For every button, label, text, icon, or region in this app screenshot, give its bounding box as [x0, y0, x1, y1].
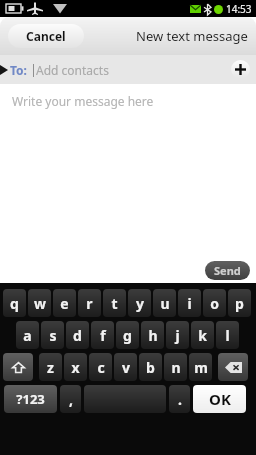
staticText: To:	[10, 62, 27, 78]
button[interactable]: .	[169, 385, 190, 413]
staticText: x	[71, 358, 80, 377]
button[interactable]: c	[89, 353, 112, 381]
staticText: j	[175, 326, 180, 345]
button[interactable]: y	[128, 289, 151, 317]
button[interactable]: u	[153, 289, 176, 317]
button[interactable]: ,	[60, 385, 81, 413]
staticText: k	[198, 326, 207, 345]
staticText: i	[187, 294, 192, 313]
staticText: Write your message here	[12, 93, 154, 109]
button[interactable]: d	[66, 321, 89, 349]
staticText: y	[136, 294, 144, 313]
button[interactable]: i	[178, 289, 201, 317]
button[interactable]: ?123	[4, 385, 57, 413]
staticText: Send	[214, 263, 241, 278]
button[interactable]: Backspace	[218, 353, 248, 381]
button[interactable]: x	[64, 353, 87, 381]
staticText: c	[97, 358, 105, 377]
button[interactable]: q	[3, 289, 26, 317]
staticText: p	[235, 294, 244, 313]
staticText: New text message	[136, 27, 248, 45]
button[interactable]: j	[166, 321, 189, 349]
staticText: t	[111, 294, 118, 313]
button[interactable]: f	[91, 321, 114, 349]
staticText: r	[86, 294, 93, 313]
button[interactable]: a	[16, 321, 39, 349]
staticText: g	[123, 326, 132, 345]
staticText: m	[194, 358, 208, 377]
button[interactable]: k	[191, 321, 214, 349]
staticText: s	[49, 326, 57, 345]
staticText: Add contacts	[36, 62, 109, 78]
button[interactable]: z	[39, 353, 62, 381]
staticText: e	[60, 294, 69, 313]
staticText: l	[225, 326, 230, 345]
staticText: q	[10, 294, 19, 313]
staticText: OK	[209, 389, 231, 409]
button[interactable]: w	[28, 289, 51, 317]
button[interactable]: Space	[84, 385, 166, 413]
button[interactable]: p	[228, 289, 251, 317]
button[interactable]: o	[203, 289, 226, 317]
staticText: a	[23, 326, 32, 345]
button[interactable]: Shift	[3, 353, 33, 381]
button[interactable]: Write your message here	[0, 84, 256, 283]
staticText: z	[47, 358, 54, 377]
staticText: Cancel	[26, 28, 66, 44]
staticText: .	[178, 390, 182, 409]
staticText: w	[34, 294, 46, 313]
staticText: 14:53	[226, 2, 252, 16]
staticText: v	[122, 358, 130, 377]
button[interactable]: e	[53, 289, 76, 317]
staticText: o	[210, 294, 219, 313]
button[interactable]: g	[116, 321, 139, 349]
button[interactable]: v	[114, 353, 137, 381]
button[interactable]: OK	[193, 385, 246, 413]
staticText: f	[100, 326, 106, 345]
staticText: ,	[69, 390, 73, 409]
button[interactable]: m	[189, 353, 212, 381]
button[interactable]: Add contact	[231, 60, 250, 79]
button[interactable]: b	[139, 353, 162, 381]
button[interactable]: h	[141, 321, 164, 349]
button[interactable]: r	[78, 289, 101, 317]
staticText: u	[160, 294, 170, 313]
button[interactable]: n	[164, 353, 187, 381]
button[interactable]: s	[41, 321, 64, 349]
staticText: h	[148, 326, 158, 345]
staticText: d	[73, 326, 82, 345]
staticText: n	[171, 358, 181, 377]
button[interactable]: t	[103, 289, 126, 317]
staticText: b	[146, 358, 155, 377]
button[interactable]: l	[216, 321, 239, 349]
button[interactable]: Send	[205, 261, 250, 280]
staticText: ?123	[16, 390, 45, 408]
button[interactable]: To:	[0, 55, 256, 84]
button[interactable]: Cancel	[8, 24, 84, 48]
